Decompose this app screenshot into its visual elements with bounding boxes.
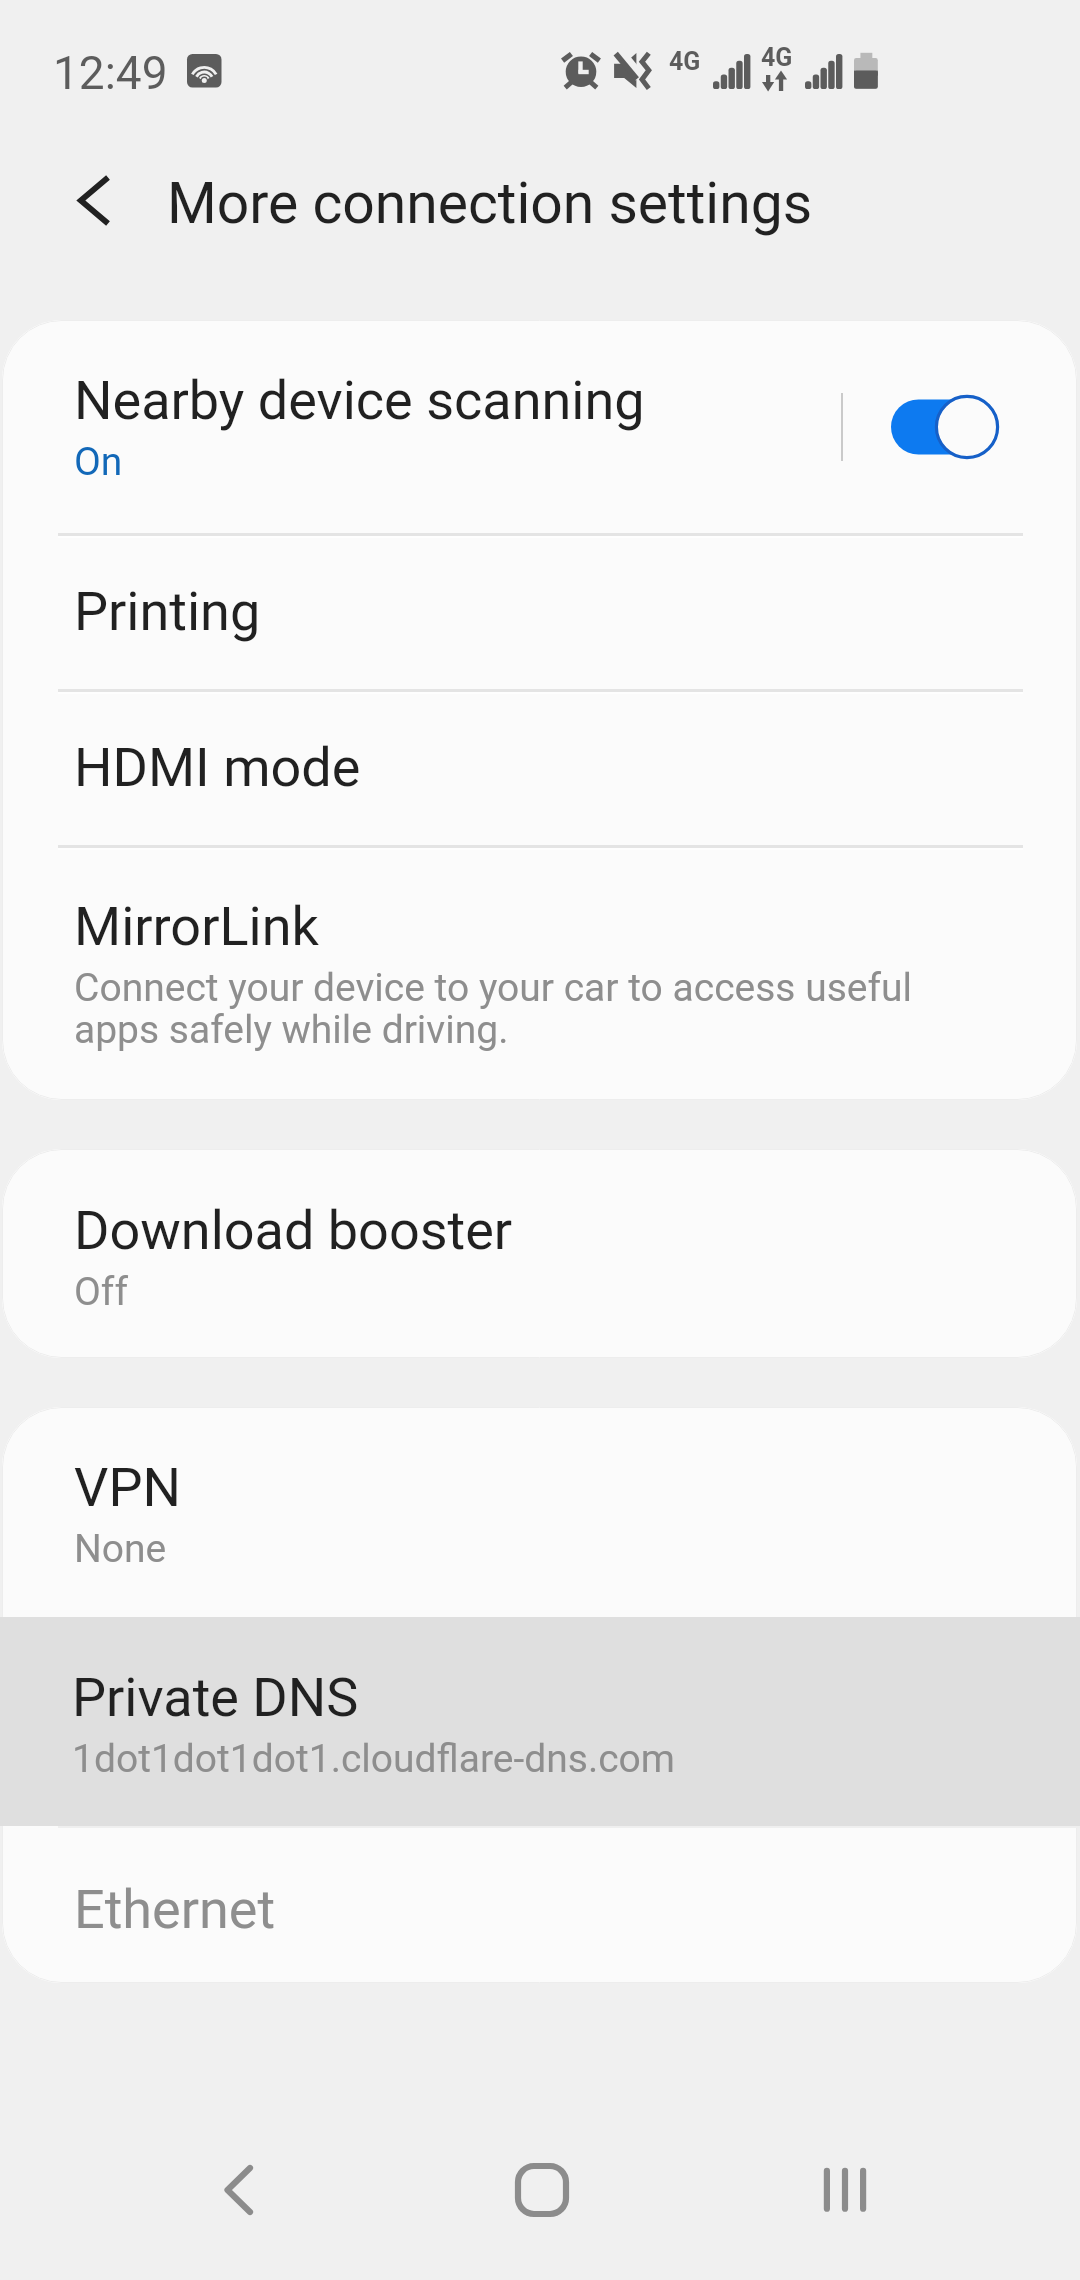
- button[interactable]: Nearby device scanning toggle: [841, 387, 1021, 467]
- button[interactable]: Home: [452, 2119, 632, 2261]
- staticText: 4G: [761, 43, 793, 72]
- staticText: 12:49: [53, 46, 168, 100]
- staticText: On: [74, 439, 123, 485]
- button[interactable]: Download booster: [2, 1149, 1077, 1358]
- button[interactable]: Nearby device scanning: [2, 320, 1077, 533]
- button[interactable]: Back: [148, 2119, 328, 2261]
- staticText: Connect your device to your car to acces…: [74, 965, 913, 1053]
- staticText: VPN: [74, 1456, 181, 1519]
- button[interactable]: Navigate up: [48, 156, 144, 244]
- button[interactable]: MirrorLink: [2, 845, 1077, 1100]
- staticText: MirrorLink: [74, 895, 319, 958]
- button[interactable]: Printing: [2, 533, 1077, 689]
- staticText: None: [74, 1526, 167, 1572]
- button[interactable]: Private DNS: [0, 1617, 1080, 1826]
- staticText: Private DNS: [72, 1666, 359, 1729]
- staticText: Off: [74, 1269, 128, 1315]
- staticText: HDMI mode: [74, 736, 361, 799]
- button[interactable]: Ethernet: [2, 1826, 1077, 1983]
- staticText: Download booster: [74, 1199, 513, 1262]
- button[interactable]: HDMI mode: [2, 689, 1077, 845]
- staticText: 4G: [669, 47, 701, 76]
- button[interactable]: Recent apps: [755, 2119, 935, 2261]
- staticText: Printing: [74, 580, 261, 643]
- staticText: 1dot1dot1dot1.cloudflare-dns.com: [72, 1736, 676, 1782]
- button[interactable]: VPN: [2, 1407, 1077, 1617]
- staticText: Ethernet: [74, 1878, 276, 1941]
- staticText: Nearby device scanning: [74, 369, 645, 432]
- staticText: More connection settings: [167, 170, 813, 237]
